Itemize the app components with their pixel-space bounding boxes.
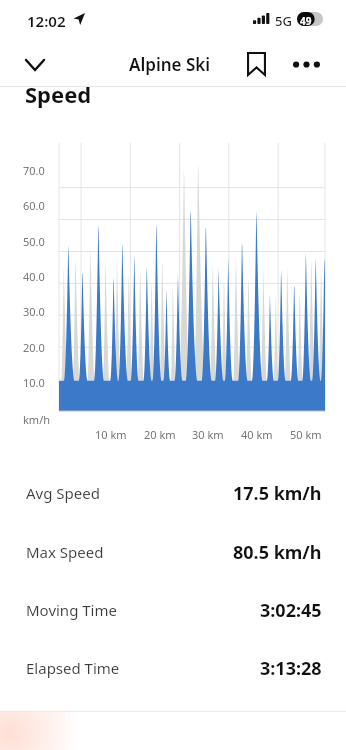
staticText: 20 km [144, 427, 176, 442]
staticText: 30.0 [23, 304, 45, 319]
staticText: 49 [300, 14, 312, 28]
staticText: 80.5 km/h [233, 540, 322, 565]
staticText: Avg Speed [26, 483, 100, 503]
staticText: Max Speed [26, 542, 104, 562]
staticText: Elapsed Time [26, 658, 120, 678]
button[interactable]: Bookmark [238, 46, 274, 82]
button[interactable]: Moving Time [0, 585, 346, 635]
staticText: km/h [23, 412, 51, 427]
button[interactable]: Max Speed [0, 527, 346, 577]
button[interactable]: More options [288, 46, 324, 82]
staticText: 10.0 [23, 375, 45, 390]
staticText: 40 km [241, 427, 273, 442]
staticText: 20.0 [23, 340, 45, 355]
staticText: 60.0 [23, 198, 45, 213]
staticText: Moving Time [26, 600, 117, 620]
button[interactable]: Avg Speed [0, 468, 346, 518]
staticText: 5G [275, 12, 292, 30]
staticText: 17.5 km/h [233, 481, 322, 506]
staticText: 50.0 [23, 234, 45, 249]
staticText: 50 km [290, 427, 322, 442]
staticText: 10 km [95, 427, 127, 442]
staticText: 3:13:28 [260, 656, 322, 681]
staticText: 3:02:45 [260, 598, 322, 623]
staticText: Speed [25, 79, 92, 109]
staticText: 12:02 [27, 11, 66, 31]
staticText: 70.0 [23, 163, 45, 178]
staticText: Alpine Ski [129, 53, 211, 76]
button[interactable]: Elapsed Time [0, 643, 346, 693]
button[interactable]: Collapse [17, 47, 53, 83]
staticText: 40.0 [23, 269, 45, 284]
staticText: 30 km [192, 427, 224, 442]
